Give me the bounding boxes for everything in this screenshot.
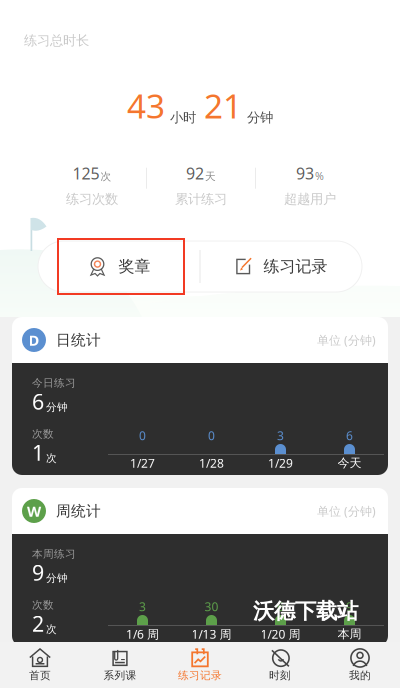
staticText: 累计练习 [175,191,227,207]
staticText: 周统计 [56,502,101,520]
staticText: % [315,169,324,183]
staticText: 1/27 [130,455,155,471]
staticText: 本周练习 [32,547,76,560]
staticText: 练习记录 [178,669,222,682]
staticText: 1/13 周 [191,626,231,642]
staticText: 92 [186,163,204,184]
staticText: 奖章 [118,257,150,276]
staticText: 超越用户 [284,191,336,207]
staticText: 我的 [349,669,371,682]
staticText: 日统计 [56,331,101,349]
staticText: 练习次数 [66,191,118,207]
staticText: 分钟 [46,401,68,414]
staticText: 次 [100,170,111,183]
staticText: 1/20 周 [260,626,300,642]
staticText: 首页 [29,669,51,682]
staticText: 本周 [337,627,361,641]
staticText: 时刻 [269,669,291,682]
staticText: 0 [208,427,215,443]
button[interactable]: 时刻 [240,642,320,688]
staticText: 次 [46,452,57,465]
staticText: 0 [139,427,146,443]
staticText: 3 [139,598,146,614]
staticText: 6 [346,427,353,443]
staticText: 6 [277,598,284,614]
staticText: 天 [205,170,216,183]
button[interactable]: 练习记录 [200,241,361,292]
staticText: 21 [204,83,242,128]
staticText: 沃德下载站 [253,598,358,624]
staticText: 小时 [170,109,196,126]
staticText: 125 [72,163,99,184]
button[interactable]: 我的 [320,642,400,688]
staticText: 93 [296,163,314,184]
staticText: 分钟 [247,109,273,126]
staticText: 系列课 [103,669,136,682]
staticText: 6 [32,387,44,416]
staticText: 练习总时长 [24,32,89,49]
staticText: 1/6 周 [126,626,159,642]
staticText: 30 [204,598,218,614]
staticText: 1 [32,438,44,467]
staticText: 次 [46,623,57,636]
staticText: D [28,330,39,350]
staticText: W [27,501,41,521]
staticText: 43 [127,83,165,128]
staticText: 今天 [337,456,361,470]
staticText: 单位 (分钟) [317,332,376,348]
staticText: 次数 [32,427,54,440]
staticText: 单位 (分钟) [317,503,376,519]
staticText: 今日练习 [32,376,76,389]
staticText: 练习记录 [263,257,327,276]
staticText: 2 [32,609,44,638]
staticText: 9 [32,558,44,587]
button[interactable]: 首页 [0,642,80,688]
button[interactable]: 练习记录 [160,642,240,688]
staticText: 1/29 [268,455,293,471]
staticText: 3 [277,427,284,443]
button[interactable]: 奖章 [38,241,199,292]
staticText: 次数 [32,598,54,611]
staticText: 9 [346,598,353,614]
staticText: 1/28 [199,455,224,471]
button[interactable]: 系列课 [80,642,160,688]
staticText: 分钟 [46,572,68,585]
